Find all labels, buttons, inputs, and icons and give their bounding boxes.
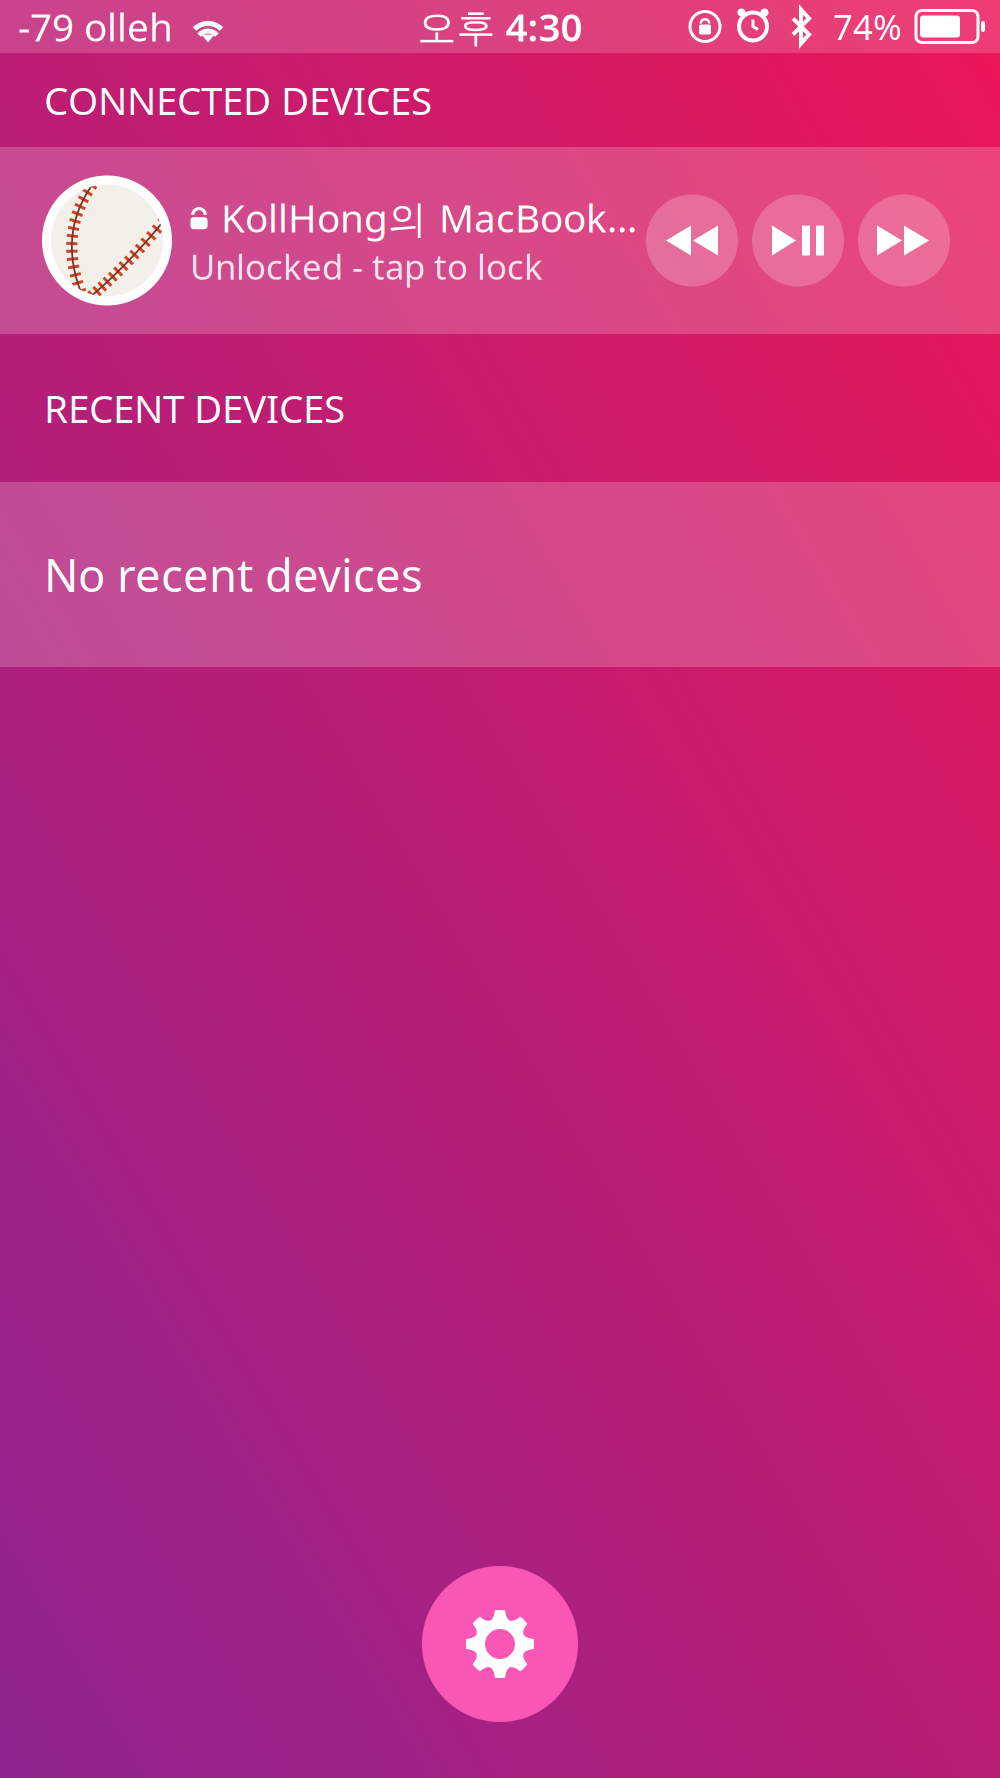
staticText: No recent devices (44, 544, 423, 605)
button[interactable]: Play or pause (752, 194, 844, 286)
button[interactable]: Previous track (646, 194, 738, 286)
button[interactable]: Next track (858, 194, 950, 286)
button[interactable]: Settings (422, 1566, 578, 1722)
staticText: Unlocked - tap to lock (190, 243, 543, 289)
button[interactable]: KollHong의 MacBook... (0, 147, 1000, 334)
staticText: KollHong의 MacBook... (221, 192, 637, 243)
staticText: 74% (833, 3, 902, 49)
staticText: RECENT DEVICES (44, 382, 345, 434)
staticText: -79 olleh (18, 1, 173, 52)
staticText: CONNECTED DEVICES (44, 74, 432, 126)
staticText: 오후 4:30 (417, 1, 582, 52)
